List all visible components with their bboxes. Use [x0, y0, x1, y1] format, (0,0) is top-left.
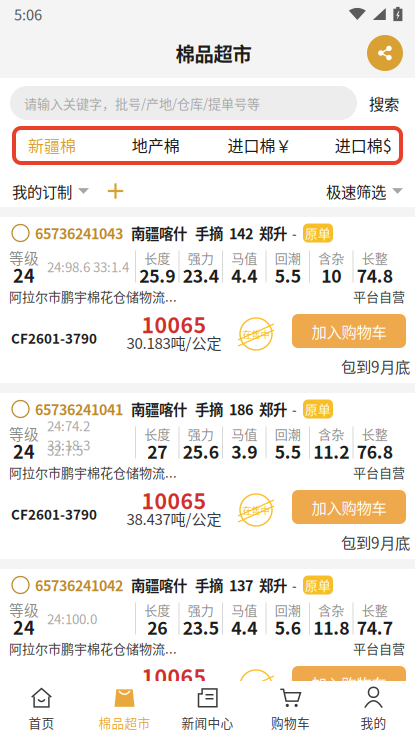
button[interactable]: 新闻中心: [166, 681, 249, 738]
staticText: 27: [147, 438, 167, 464]
staticText: 长整: [362, 424, 388, 443]
staticText: 原单: [305, 400, 331, 418]
staticText: 10065: [141, 309, 206, 339]
button[interactable]: 新疆棉: [0, 128, 104, 175]
staticText: 强力: [188, 600, 214, 619]
staticText: 25.9: [139, 262, 175, 288]
staticText: 38.437吨/公定: [126, 508, 221, 529]
staticText: 原单: [305, 576, 331, 594]
staticText: 手摘: [195, 399, 223, 419]
staticText: 手摘: [195, 575, 223, 595]
staticText: 强力: [188, 424, 214, 443]
staticText: 23.5: [183, 614, 219, 640]
staticText: 含杂: [318, 600, 344, 619]
staticText: 原单: [305, 224, 331, 242]
button[interactable]: 购物车: [249, 681, 332, 738]
button[interactable]: 搜索: [357, 86, 411, 120]
staticText: 65736241043: [35, 223, 123, 243]
staticText: 在售中: [242, 679, 269, 693]
button[interactable]: 进口棉￥: [207, 128, 311, 175]
staticText: 长度: [144, 424, 170, 443]
button[interactable]: 添加订制: [89, 182, 124, 199]
staticText: 等级: [9, 423, 39, 444]
staticText: 137: [229, 575, 253, 595]
staticText: 30.183吨/公定: [126, 684, 221, 705]
staticText: 142: [229, 223, 253, 243]
staticText: 棉品超市: [98, 713, 150, 732]
staticText: 棉品超市: [175, 39, 251, 67]
staticText: 包到9月底: [341, 531, 410, 553]
button[interactable]: 我的: [332, 681, 415, 738]
staticText: 加入购物车: [311, 320, 386, 342]
staticText: 强力: [188, 248, 214, 267]
button[interactable]: 棉品超市: [83, 681, 166, 738]
staticText: 首页: [28, 713, 54, 732]
staticText: 11.8: [313, 614, 349, 640]
staticText: 长整: [362, 248, 388, 267]
staticText: 阿拉尔市鹏宇棉花仓储物流...: [9, 286, 177, 305]
staticText: 地产棉: [132, 133, 180, 157]
staticText: 24:98.6 33:1.4: [47, 257, 129, 276]
staticText: 进口棉￥: [227, 133, 291, 157]
staticText: 5.6: [275, 614, 301, 640]
staticText: 平台自营: [353, 286, 405, 305]
staticText: 4.4: [231, 262, 257, 288]
staticText: 25.6: [183, 438, 219, 464]
staticText: 我的: [360, 713, 386, 732]
staticText: 新疆棉: [28, 133, 76, 157]
staticText: 包到9月底: [341, 707, 410, 729]
staticText: 26: [147, 614, 167, 640]
staticText: 极速筛选: [326, 180, 386, 202]
staticText: 加入购物车: [311, 672, 386, 694]
staticText: CF2601-3790: [11, 680, 97, 700]
button[interactable]: 65736241042: [0, 569, 415, 735]
staticText: 10: [321, 262, 341, 288]
staticText: 长整: [362, 600, 388, 619]
staticText: 南疆喀什: [131, 399, 187, 419]
button[interactable]: 地产棉: [104, 128, 208, 175]
staticText: 马值: [231, 600, 257, 619]
staticText: 进口棉$: [335, 133, 392, 157]
staticText: CF2601-3790: [11, 328, 97, 348]
button[interactable]: 65736241043: [0, 217, 415, 383]
button[interactable]: 请输入关键字，批号/产地/仓库/提单号等: [10, 86, 357, 120]
staticText: 5:06: [14, 3, 42, 25]
staticText: 购物车: [271, 713, 310, 732]
staticText: 手摘: [195, 223, 223, 243]
button[interactable]: 65736241041: [0, 393, 415, 559]
staticText: 在售中: [242, 503, 269, 517]
staticText: 4.4: [231, 614, 257, 640]
staticText: 5.5: [275, 438, 301, 464]
staticText: 76.8: [357, 438, 393, 464]
staticText: 30.183吨/公定: [126, 332, 221, 353]
staticText: 郑升: [259, 223, 287, 243]
staticText: 11.2: [313, 438, 349, 464]
staticText: 加入购物车: [311, 496, 386, 518]
button[interactable]: 极速筛选: [326, 180, 403, 202]
button[interactable]: 进口棉$: [311, 128, 415, 175]
staticText: -: [292, 223, 297, 243]
staticText: 24:100.0: [47, 609, 97, 628]
staticText: 回潮: [275, 248, 301, 267]
staticText: 平台自营: [353, 462, 405, 481]
staticText: 65736241041: [35, 399, 123, 419]
staticText: 平台自营: [353, 638, 405, 657]
staticText: 3.9: [231, 438, 257, 464]
staticText: 10065: [141, 485, 206, 515]
staticText: 回潮: [275, 600, 301, 619]
staticText: 新闻中心: [181, 713, 233, 732]
button[interactable]: 分享: [367, 35, 403, 71]
staticText: 马值: [231, 248, 257, 267]
staticText: -: [292, 575, 297, 595]
button[interactable]: 首页: [0, 681, 83, 738]
staticText: 5.5: [275, 262, 301, 288]
staticText: 阿拉尔市鹏宇棉花仓储物流...: [9, 638, 177, 657]
staticText: 马值: [231, 424, 257, 443]
button[interactable]: 我的订制: [12, 180, 89, 202]
staticText: 郑升: [259, 575, 287, 595]
staticText: 我的订制: [12, 180, 72, 202]
staticText: 包到9月底: [341, 355, 410, 377]
staticText: 南疆喀什: [131, 223, 187, 243]
staticText: 32:7.5: [47, 440, 83, 460]
staticText: 24: [13, 262, 35, 288]
